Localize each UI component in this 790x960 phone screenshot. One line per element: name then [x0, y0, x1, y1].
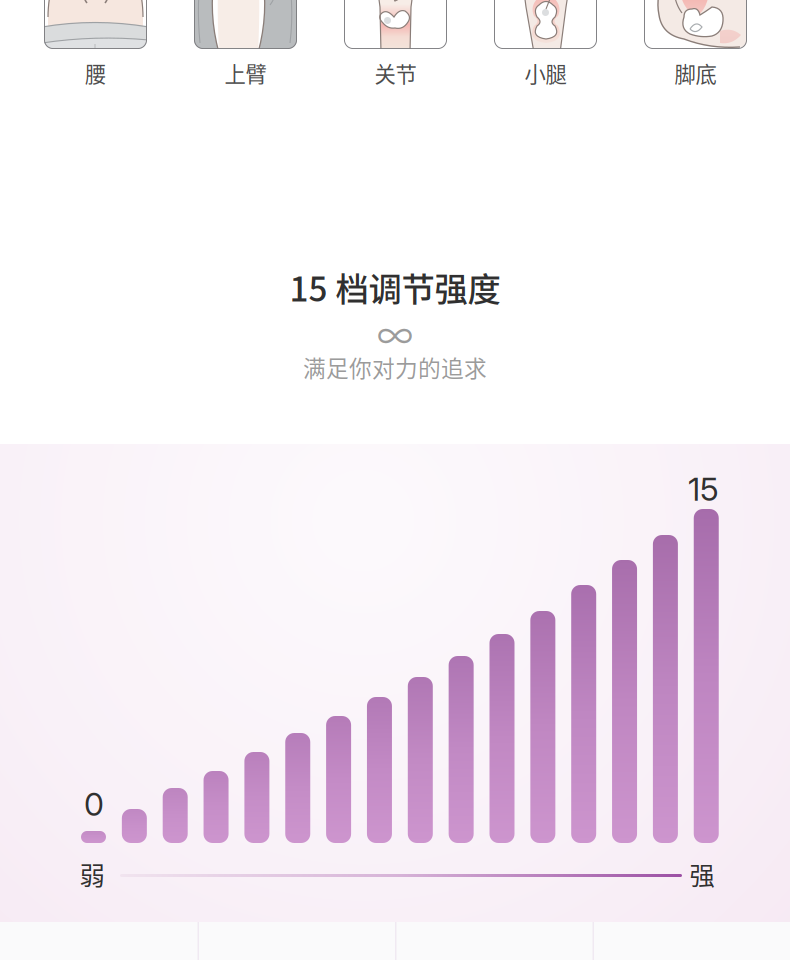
staticText: 腰 — [85, 58, 106, 88]
button[interactable]: 上臂 — [0, 0, 103, 102]
staticText: 满足你对力的追求 — [303, 351, 487, 383]
staticText: 关节 — [374, 58, 416, 88]
staticText: 0 — [84, 785, 104, 823]
staticText: 强 — [689, 856, 714, 892]
staticText: 15 — [688, 470, 719, 508]
button[interactable]: 脚底 — [0, 0, 103, 102]
staticText: 15 档调节强度 — [289, 263, 500, 311]
staticText: 小腿 — [524, 58, 566, 88]
button[interactable]: 关节 — [0, 0, 103, 102]
staticText: ∞ — [377, 308, 413, 360]
button[interactable]: 腰 — [0, 0, 103, 102]
button[interactable]: 小腿 — [0, 0, 103, 102]
staticText: 弱 — [79, 856, 104, 892]
staticText: 上臂 — [224, 58, 266, 88]
staticText: 脚底 — [674, 58, 716, 88]
